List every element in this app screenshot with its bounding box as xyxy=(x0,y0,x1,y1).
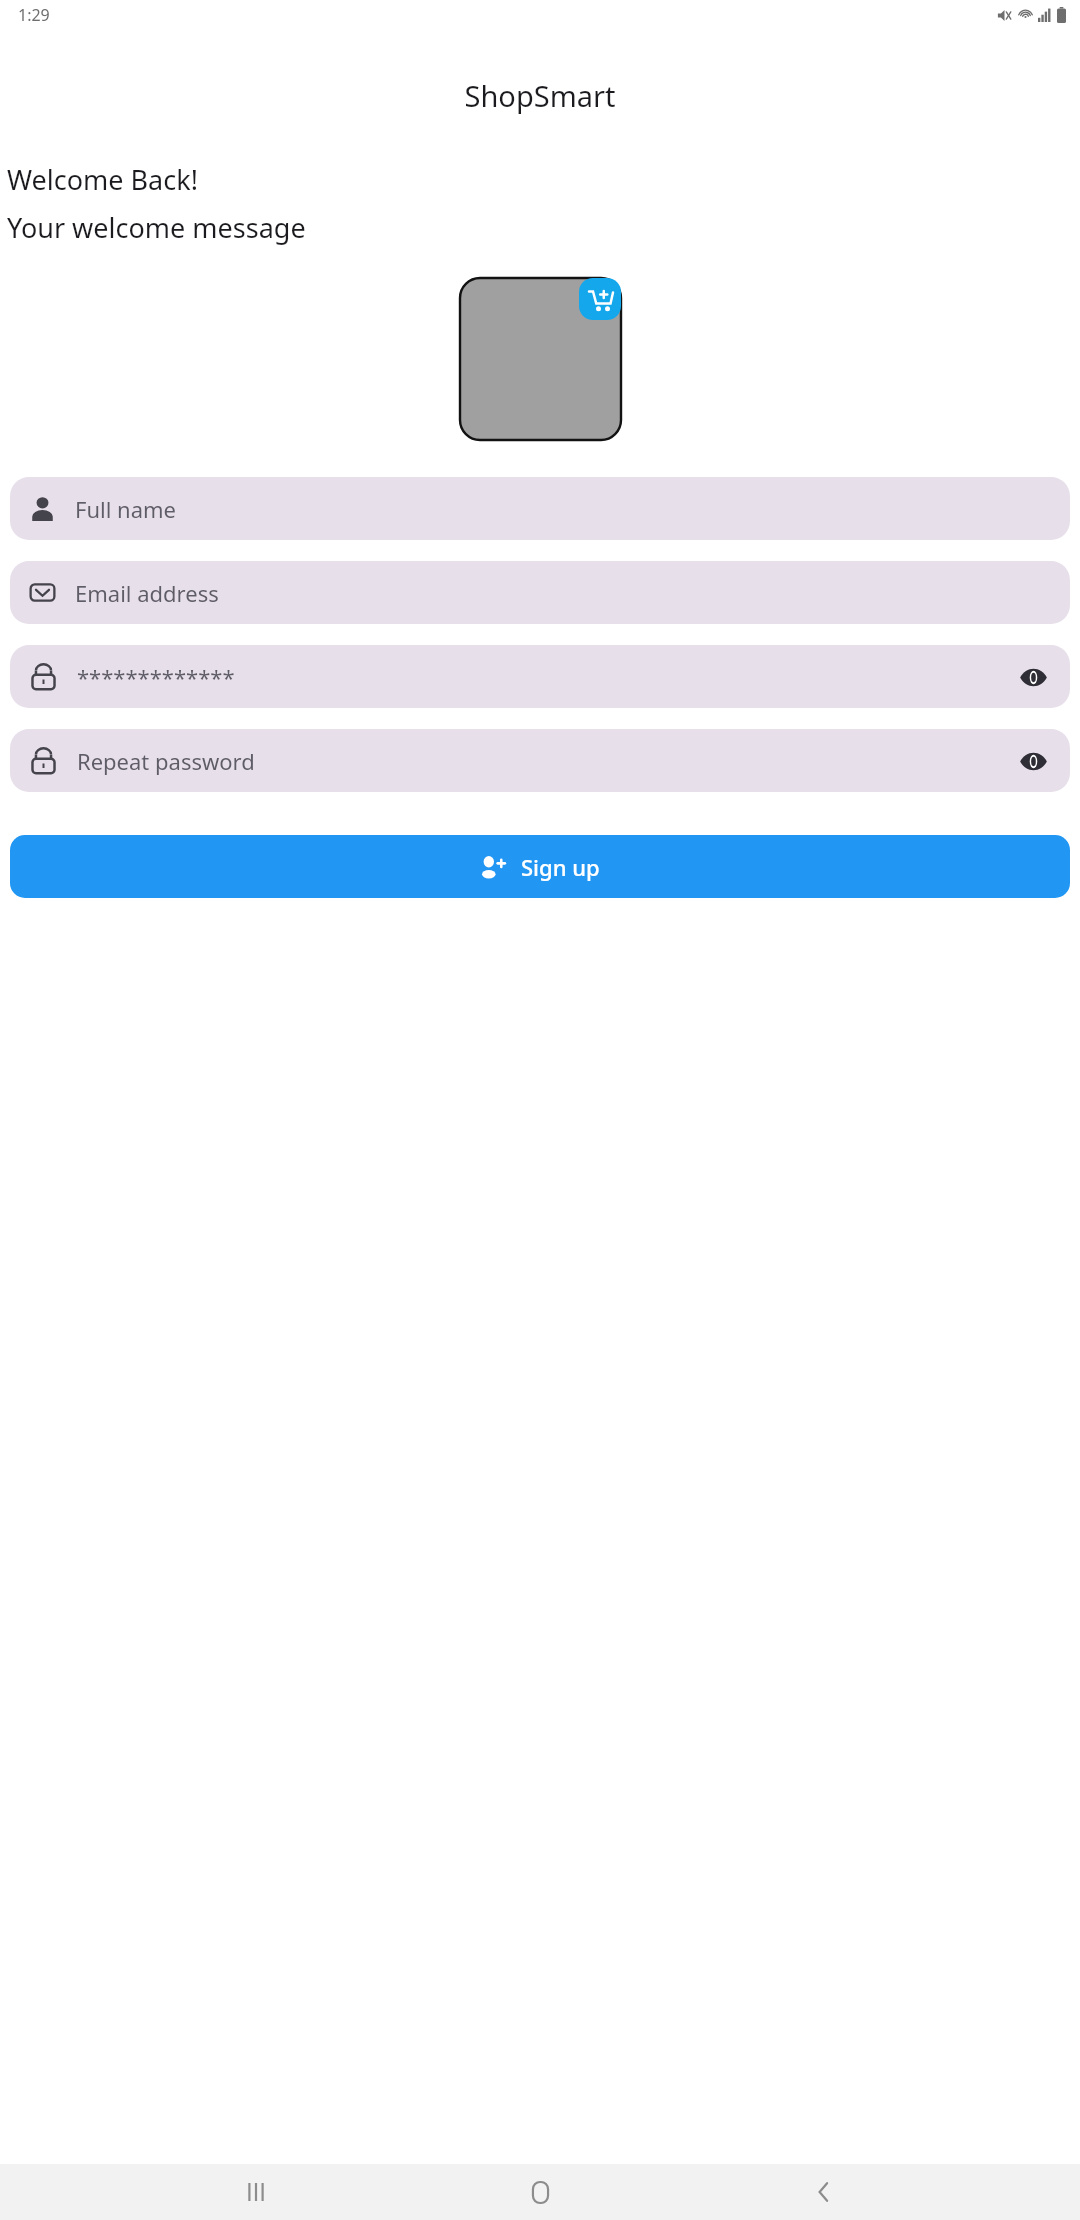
button[interactable]: Show password xyxy=(1016,744,1050,778)
staticText: ShopSmart xyxy=(0,76,1080,115)
button[interactable]: Sign up xyxy=(10,835,1070,898)
staticText: ************* xyxy=(77,662,235,692)
button[interactable]: Email address xyxy=(10,561,1070,624)
staticText: Email address xyxy=(75,578,219,608)
staticText: 1:29 xyxy=(18,4,50,26)
staticText: Full name xyxy=(75,494,177,524)
button[interactable]: Show password xyxy=(1016,660,1050,694)
staticText: Welcome Back! xyxy=(7,161,198,198)
button[interactable]: Recents xyxy=(228,2164,284,2220)
button[interactable]: Add to cart xyxy=(579,278,621,320)
staticText: Sign up xyxy=(521,852,600,882)
button[interactable]: Full name xyxy=(10,477,1070,540)
button[interactable]: Repeat password xyxy=(10,729,1070,792)
button[interactable]: ************* xyxy=(10,645,1070,708)
button[interactable]: Home xyxy=(512,2164,568,2220)
staticText: Repeat password xyxy=(77,746,255,776)
button[interactable]: Back xyxy=(796,2164,852,2220)
staticText: Your welcome message xyxy=(7,209,306,246)
